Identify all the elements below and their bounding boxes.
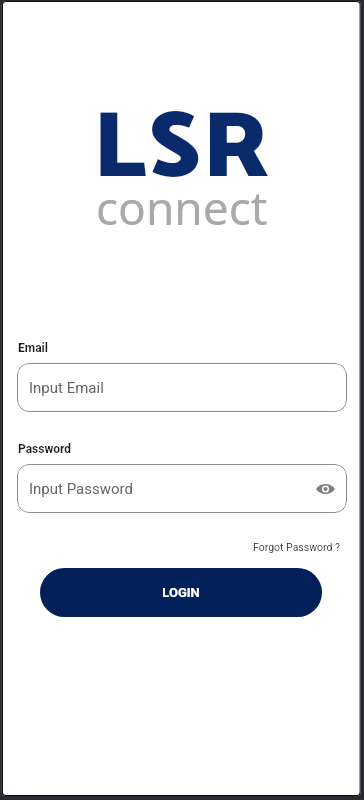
staticText: Input Email	[29, 379, 104, 397]
staticText: Email	[18, 341, 48, 355]
button[interactable]: LOGIN	[40, 568, 322, 617]
button[interactable]: Show password	[315, 479, 335, 499]
button[interactable]: Input Email	[17, 363, 347, 412]
staticText: LSR	[93, 74, 272, 227]
staticText: connect	[96, 176, 268, 239]
staticText: Password	[18, 442, 72, 456]
staticText: Input Password	[29, 480, 133, 498]
button[interactable]: Forgot Password ?	[253, 541, 341, 553]
staticText: LOGIN	[162, 585, 200, 600]
button[interactable]: Input Password	[17, 464, 347, 513]
